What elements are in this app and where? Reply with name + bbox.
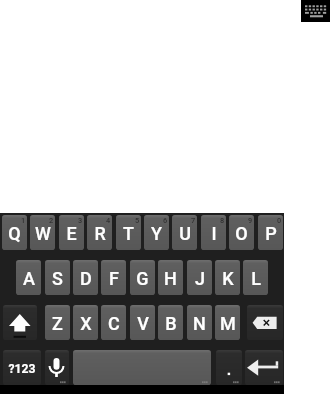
staticText: N [193,313,206,334]
staticText: 4 [106,216,111,225]
button[interactable]: Space [73,350,211,385]
staticText: F [109,268,119,289]
staticText: M [220,313,236,334]
button[interactable]: Period [216,350,242,385]
button[interactable]: Z [45,305,70,340]
staticText: Q [8,223,21,244]
button[interactable]: S [45,260,70,295]
staticText: P [265,223,277,244]
staticText: 8 [220,216,225,225]
button[interactable]: Voice input [45,350,69,385]
button[interactable]: Enter [245,350,283,385]
staticText: C [108,313,120,334]
button[interactable]: U [172,215,197,250]
staticText: O [235,223,248,244]
staticText: B [165,313,177,334]
staticText: R [94,223,106,244]
staticText: J [195,268,205,289]
button[interactable]: E [59,215,84,250]
button[interactable]: H [158,260,183,295]
button[interactable]: T [116,215,141,250]
staticText: 0 [277,216,282,225]
staticText: W [35,223,51,244]
button[interactable]: A [16,260,41,295]
button[interactable]: X [73,305,98,340]
staticText: G [136,268,149,289]
button[interactable]: R [87,215,112,250]
button[interactable]: N [187,305,212,340]
staticText: T [123,223,134,244]
staticText: E [66,223,77,244]
button[interactable]: D [73,260,98,295]
button[interactable]: ?123 [3,350,41,385]
button[interactable]: V [130,305,155,340]
button[interactable]: C [101,305,126,340]
staticText: D [80,268,92,289]
staticText: A [23,268,35,289]
staticText: S [52,268,63,289]
staticText: V [137,313,149,334]
staticText: 6 [163,216,168,225]
staticText: Y [151,223,162,244]
button[interactable]: Y [144,215,169,250]
button[interactable]: M [215,305,240,340]
staticText: K [222,268,234,289]
staticText: X [80,313,92,334]
staticText: Z [52,313,63,334]
staticText: 9 [248,216,253,225]
button[interactable]: F [101,260,126,295]
button[interactable]: I [201,215,226,250]
staticText: L [251,268,261,289]
button[interactable]: B [158,305,183,340]
staticText: 1 [21,216,26,225]
staticText: ?123 [8,362,36,376]
staticText: 7 [191,216,196,225]
button[interactable]: O [229,215,254,250]
staticText: 5 [135,216,140,225]
button[interactable]: Show keyboard [301,0,330,22]
button[interactable]: K [215,260,240,295]
staticText: I [211,223,217,244]
button[interactable]: Shift [3,305,37,340]
staticText: H [164,268,177,289]
button[interactable]: G [130,260,155,295]
staticText: 2 [49,216,54,225]
button[interactable]: P [258,215,283,250]
staticText: 3 [78,216,83,225]
staticText: U [179,223,191,244]
button[interactable]: W [30,215,55,250]
button[interactable]: Q [2,215,27,250]
button[interactable]: J [187,260,212,295]
button[interactable]: L [243,260,268,295]
button[interactable]: Delete [247,305,283,340]
